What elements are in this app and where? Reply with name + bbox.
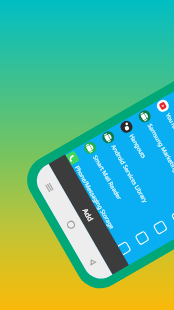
button[interactable]: Hangouts	[114, 115, 174, 237]
staticText: Android Services Library	[109, 143, 161, 225]
button[interactable]: Back	[73, 237, 112, 285]
staticText: Phone/Messaging Storage	[73, 164, 125, 246]
staticText: Add	[80, 206, 96, 223]
staticText: Smart Mail Reader	[91, 154, 143, 236]
staticText: Hangouts	[127, 133, 174, 215]
button[interactable]: Android Services Library	[96, 126, 174, 247]
button[interactable]: Phone/Messaging Storage	[65, 147, 142, 265]
button[interactable]: Home	[51, 200, 91, 248]
button[interactable]: YouTube	[151, 94, 174, 216]
button[interactable]: Add	[48, 154, 129, 275]
button[interactable]: Smart Mail Reader	[78, 136, 160, 258]
button[interactable]: Calendar Storage	[169, 84, 174, 205]
button[interactable]: Recent apps	[30, 164, 69, 211]
staticText: YouTube	[164, 112, 174, 194]
staticText: Samsung Marketing	[146, 122, 174, 204]
button[interactable]: Samsung Marketing	[132, 105, 174, 226]
